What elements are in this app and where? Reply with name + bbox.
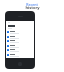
button[interactable] <box>7 40 34 44</box>
button[interactable] <box>7 36 34 40</box>
staticText: Recent <box>26 2 38 7</box>
staticText: history <box>25 5 40 10</box>
button[interactable] <box>7 54 34 58</box>
button[interactable] <box>7 45 34 49</box>
button[interactable] <box>7 49 34 53</box>
button[interactable] <box>7 31 34 35</box>
